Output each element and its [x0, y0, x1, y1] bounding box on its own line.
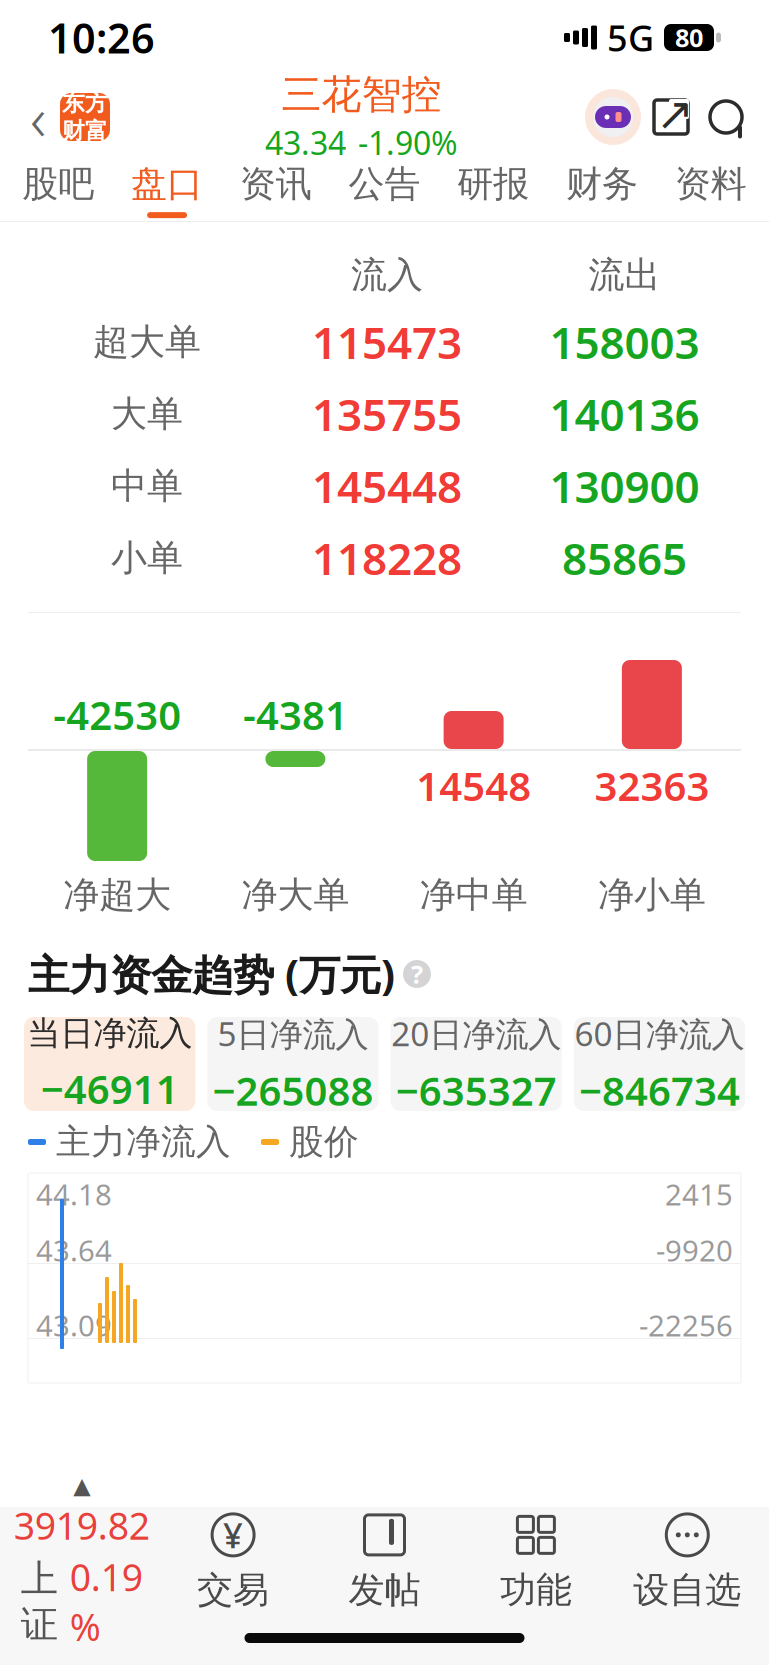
staticText: −265088 — [212, 1064, 373, 1117]
staticText: ↗ — [656, 88, 694, 140]
staticText: ¥ — [223, 1512, 243, 1558]
staticText: 20日净流入 — [391, 1011, 561, 1056]
button[interactable]: 5日净流入 — [207, 1017, 378, 1111]
staticText: -42530 — [53, 688, 181, 741]
staticText: 43.34 — [265, 121, 346, 164]
staticText: ‹ — [30, 76, 46, 158]
staticText: 2415 — [665, 1174, 733, 1213]
staticText: 流出 — [588, 253, 660, 297]
staticText: ▲ — [73, 1473, 90, 1498]
button[interactable]: 公告 — [330, 159, 439, 221]
staticText: −635327 — [396, 1064, 557, 1117]
staticText: 三花智控 — [281, 70, 441, 119]
staticText: 小单 — [111, 536, 183, 580]
staticText: 158003 — [549, 313, 699, 371]
staticText: -1.90% — [358, 121, 458, 164]
staticText: 85865 — [562, 529, 687, 587]
button[interactable]: 研报 — [439, 159, 548, 221]
button[interactable]: 功能 — [460, 1507, 612, 1617]
button[interactable]: 财务 — [548, 159, 656, 221]
staticText: 盘口 — [131, 162, 203, 206]
staticText: 140136 — [549, 385, 699, 443]
button[interactable]: 智能助手 — [583, 87, 643, 147]
staticText: 中单 — [111, 464, 183, 508]
button[interactable]: 说明 — [403, 957, 431, 991]
staticText: 43.64 — [36, 1230, 112, 1269]
staticText: 研报 — [457, 162, 529, 206]
staticText: 主力净流入 — [56, 1121, 231, 1163]
button[interactable]: 上证指数 — [6, 1507, 157, 1617]
button[interactable]: 分享 — [643, 89, 699, 145]
button[interactable]: 资讯 — [221, 159, 330, 221]
staticText: 135755 — [312, 385, 462, 443]
staticText: 115473 — [312, 313, 462, 371]
button[interactable]: 股吧 — [4, 159, 113, 221]
button[interactable]: 设自选 — [612, 1507, 763, 1617]
staticText: 设自选 — [633, 1568, 741, 1612]
staticText: 14548 — [416, 759, 531, 812]
staticText: -22256 — [639, 1305, 733, 1344]
staticText: −846734 — [579, 1064, 740, 1117]
button[interactable]: 20日净流入 — [390, 1017, 562, 1111]
staticText: 股价 — [289, 1121, 359, 1163]
staticText: 净小单 — [598, 873, 706, 917]
staticText: 财富 — [62, 117, 108, 145]
staticText: 118228 — [312, 529, 462, 587]
staticText: 股吧 — [22, 162, 94, 206]
button[interactable]: 60日净流入 — [574, 1017, 745, 1111]
staticText: 资讯 — [240, 162, 312, 206]
staticText: ? — [411, 957, 423, 991]
staticText: 发帖 — [348, 1568, 420, 1612]
button[interactable]: 发帖 — [309, 1507, 460, 1617]
staticText: -9920 — [656, 1230, 733, 1269]
staticText: 145448 — [312, 457, 462, 515]
button[interactable]: 资料 — [656, 159, 765, 221]
staticText: 3919.82 — [14, 1500, 150, 1550]
staticText: 财务 — [566, 162, 638, 206]
staticText: 130900 — [549, 457, 699, 515]
staticText: -4381 — [243, 688, 348, 741]
staticText: 公告 — [348, 162, 420, 206]
staticText: 60日净流入 — [574, 1011, 744, 1056]
staticText: 交易 — [197, 1568, 269, 1612]
staticText: 当日净流入 — [27, 1013, 192, 1054]
staticText: 大单 — [111, 392, 183, 436]
staticText: 净中单 — [420, 873, 528, 917]
staticText: 功能 — [500, 1568, 572, 1612]
staticText: −46911 — [41, 1062, 179, 1115]
button[interactable]: ¥ — [157, 1507, 309, 1617]
staticText: 0.19% — [70, 1552, 143, 1651]
staticText: 净超大 — [63, 873, 171, 917]
staticText: 44.18 — [36, 1174, 112, 1213]
staticText: 主力资金趋势 (万元) — [28, 947, 395, 1001]
button[interactable]: 盘口 — [113, 159, 221, 221]
staticText: 32363 — [594, 759, 709, 812]
staticText: 43.09 — [36, 1305, 112, 1344]
staticText: 东方 — [62, 89, 108, 117]
button[interactable]: 东方财富 — [60, 93, 110, 141]
staticText: 资料 — [675, 162, 747, 206]
staticText: 80 — [675, 21, 703, 54]
staticText: 5日净流入 — [217, 1011, 368, 1056]
button[interactable]: 当日净流入 — [24, 1017, 195, 1111]
staticText: 5G — [607, 14, 654, 61]
button[interactable]: 返回 — [16, 89, 60, 145]
staticText: 净大单 — [241, 873, 349, 917]
staticText: 流入 — [351, 253, 423, 297]
staticText: 10:26 — [48, 10, 155, 65]
staticText: 上证 — [21, 1556, 58, 1647]
staticText: 超大单 — [93, 320, 201, 364]
button[interactable]: 搜索 — [699, 90, 753, 144]
